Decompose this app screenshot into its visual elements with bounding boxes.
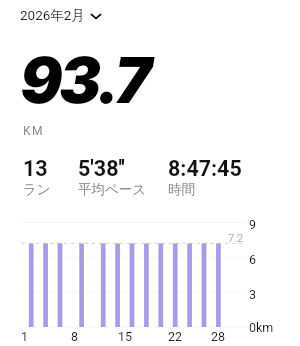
staticText: 0km — [249, 320, 274, 335]
staticText: 8:47:45 — [168, 156, 242, 181]
staticText: 2026年2月 — [20, 7, 85, 24]
staticText: 28 — [211, 329, 226, 344]
staticText: 1 — [21, 329, 29, 344]
staticText: 3 — [249, 287, 257, 302]
staticText: 13 — [23, 156, 48, 181]
staticText: 平均ペース — [78, 181, 147, 198]
staticText: KM — [23, 124, 44, 138]
staticText: 5'38'' — [78, 156, 125, 181]
staticText: 時間 — [168, 181, 195, 198]
staticText: ラン — [23, 181, 51, 198]
staticText: 9 — [249, 217, 257, 232]
staticText: 6 — [249, 252, 257, 267]
staticText: 7.2 — [228, 232, 244, 245]
staticText: 93.7 — [20, 42, 149, 118]
button[interactable]: 2026年2月 — [19, 5, 103, 26]
staticText: 8 — [71, 329, 79, 344]
other: Change month — [90, 10, 102, 22]
staticText: 22 — [168, 329, 183, 344]
staticText: 15 — [118, 329, 133, 344]
